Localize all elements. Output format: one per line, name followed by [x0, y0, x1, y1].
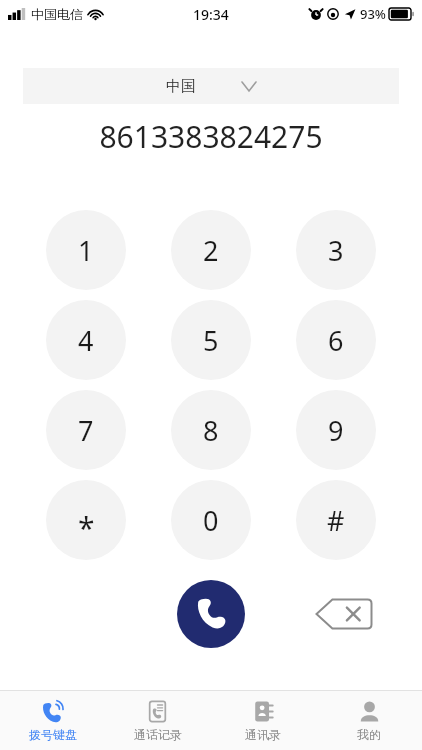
- staticText: 通话记录: [134, 727, 182, 742]
- button[interactable]: 5: [171, 300, 251, 380]
- staticText: 9: [328, 412, 344, 449]
- button[interactable]: 6: [296, 300, 376, 380]
- staticText: 19:34: [193, 5, 229, 24]
- button[interactable]: Delete: [310, 580, 378, 648]
- button[interactable]: 9: [296, 390, 376, 470]
- staticText: *: [78, 507, 95, 548]
- staticText: 5: [203, 322, 219, 359]
- button[interactable]: #: [296, 480, 376, 560]
- button[interactable]: 8: [171, 390, 251, 470]
- button[interactable]: Call: [177, 580, 245, 648]
- button[interactable]: 2: [171, 210, 251, 290]
- button[interactable]: 4: [46, 300, 126, 380]
- staticText: 4: [78, 322, 94, 359]
- button[interactable]: 通话记录: [105, 691, 210, 750]
- staticText: 2: [203, 232, 219, 269]
- button[interactable]: 我的: [316, 691, 422, 750]
- staticText: 1: [78, 232, 94, 269]
- button[interactable]: 拨号键盘: [0, 691, 105, 750]
- staticText: 拨号键盘: [29, 727, 77, 742]
- button[interactable]: 中国: [23, 68, 399, 104]
- staticText: 0: [203, 502, 219, 539]
- staticText: 中国: [166, 77, 196, 96]
- button[interactable]: 3: [296, 210, 376, 290]
- button[interactable]: 7: [46, 390, 126, 470]
- staticText: 中国电信: [31, 6, 83, 22]
- staticText: 8613383824275: [99, 116, 323, 156]
- staticText: 通讯录: [245, 727, 281, 742]
- staticText: 我的: [357, 727, 381, 742]
- button[interactable]: 通讯录: [210, 691, 316, 750]
- button[interactable]: *: [46, 480, 126, 560]
- button[interactable]: 0: [171, 480, 251, 560]
- staticText: 8: [203, 412, 219, 449]
- staticText: 93%: [360, 5, 386, 23]
- staticText: #: [327, 502, 345, 539]
- staticText: 3: [328, 232, 344, 269]
- staticText: 6: [328, 322, 344, 359]
- staticText: 7: [78, 412, 94, 449]
- button[interactable]: 1: [46, 210, 126, 290]
